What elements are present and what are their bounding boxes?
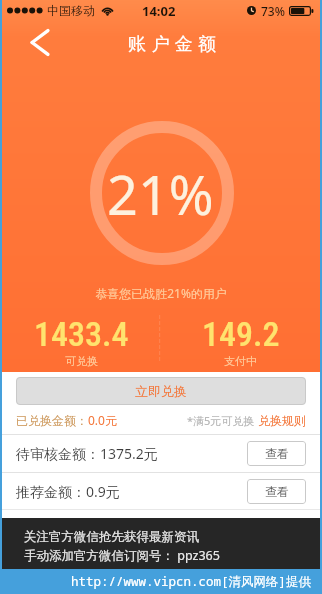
staticText: 恭喜您已战胜21%的用户 [2, 285, 320, 301]
button[interactable]: 立即兑换 [16, 377, 306, 405]
staticText: 推荐金额：0.9元 [16, 482, 120, 501]
button[interactable]: 查看 [247, 479, 306, 504]
staticText: 已兑换金额： [16, 413, 88, 428]
staticText: 关注官方微信抢先获得最新资讯 [24, 529, 199, 545]
staticText: 0.0元 [88, 412, 117, 428]
staticText: 账户金额 [128, 33, 222, 56]
button[interactable]: 查看 [247, 441, 306, 466]
staticText: 可兑换 [65, 354, 98, 368]
staticText: 手动添加官方微信订阅号： ppz365 [24, 547, 220, 564]
staticText: 73% [261, 3, 285, 19]
staticText: 支付中 [224, 354, 257, 368]
staticText: 查看 [265, 446, 289, 461]
staticText: 待审核金额：1375.2元 [16, 444, 158, 463]
staticText: 立即兑换 [135, 383, 187, 399]
button[interactable]: 推荐金额：0.9元 [2, 473, 320, 510]
button[interactable]: Back [2, 21, 48, 65]
staticText: 1433.4 [34, 314, 129, 354]
button[interactable]: 兑换规则 [258, 413, 306, 428]
staticText: 查看 [265, 484, 289, 499]
staticText: 14:02 [142, 2, 176, 20]
staticText: http://www.vipcn.com[清风网络]提供 [71, 573, 312, 590]
staticText: *满5元可兑换 [187, 413, 255, 428]
staticText: 21% [107, 157, 214, 231]
staticText: 149.2 [202, 314, 280, 354]
button[interactable]: 待审核金额：1375.2元 [2, 435, 320, 472]
staticText: 兑换规则 [258, 413, 306, 428]
staticText: 中国移动 [47, 3, 95, 18]
